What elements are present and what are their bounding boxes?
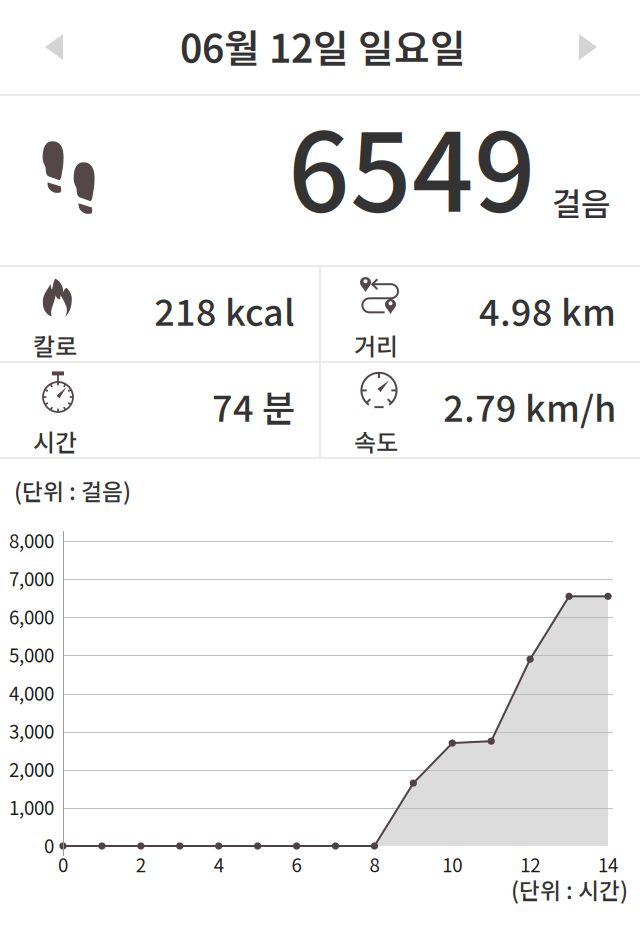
staticText: 거리 [354, 328, 398, 362]
staticText: 8 [369, 850, 379, 877]
staticText: 2,000 [9, 755, 54, 782]
staticText: 시간 [33, 424, 77, 458]
staticText: 7,000 [9, 565, 54, 592]
staticText: 4,000 [9, 679, 54, 706]
staticText: 10 [442, 850, 462, 877]
staticText: 4 [214, 850, 224, 877]
staticText: 칼로 [33, 328, 77, 362]
staticText: 5,000 [9, 641, 54, 668]
staticText: 6 [292, 850, 302, 877]
staticText: 8,000 [9, 526, 54, 553]
staticText: 0 [58, 850, 68, 877]
staticText: 6,000 [9, 603, 54, 630]
button[interactable]: Next day [536, 0, 640, 94]
staticText: (단위 : 걸음) [14, 474, 131, 507]
staticText: 2.79 km/h [443, 380, 616, 432]
staticText: 3,000 [9, 717, 54, 744]
staticText: 속도 [354, 424, 398, 458]
staticText: 2 [136, 850, 146, 877]
staticText: 06월 12일 일요일 [180, 18, 466, 74]
staticText: 14 [598, 850, 618, 877]
staticText: 4.98 km [479, 284, 616, 336]
staticText: 6549 [288, 86, 536, 242]
staticText: 걸음 [552, 179, 610, 225]
staticText: 12 [520, 850, 540, 877]
staticText: 1,000 [9, 793, 54, 820]
staticText: 74 분 [212, 380, 295, 432]
staticText: 218 kcal [154, 284, 295, 336]
staticText: 0 [44, 831, 54, 858]
staticText: (단위 : 시간) [511, 873, 628, 906]
button[interactable]: Previous day [0, 0, 108, 94]
